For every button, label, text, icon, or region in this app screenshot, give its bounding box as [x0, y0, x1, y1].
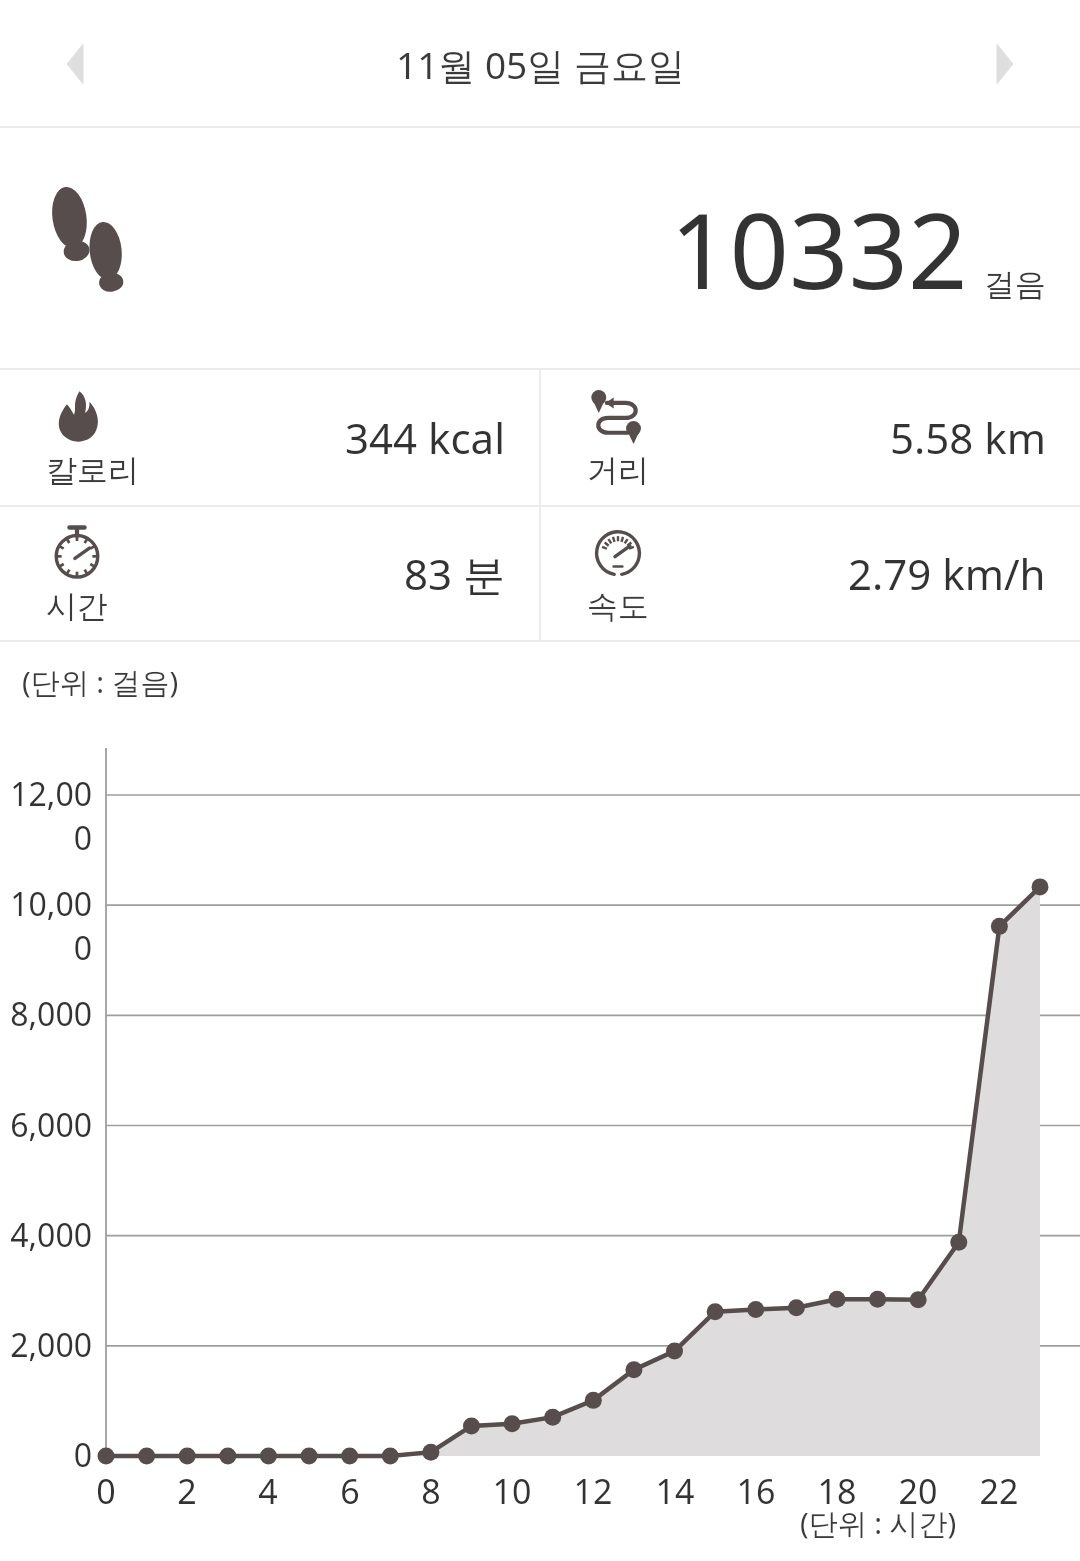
staticText: 2,000 — [0, 1323, 92, 1367]
staticText: 4 — [238, 1468, 298, 1514]
staticText: 20 — [888, 1468, 948, 1514]
staticText: 12,000 — [0, 772, 92, 860]
staticText: 0 — [0, 1433, 92, 1477]
button[interactable]: 거리 — [541, 370, 1080, 505]
staticText: 11월 05일 금요일 — [396, 39, 685, 90]
staticText: 83 분 — [404, 545, 505, 602]
staticText: 8 — [401, 1468, 461, 1514]
staticText: 10,000 — [0, 882, 92, 970]
staticText: 14 — [645, 1468, 705, 1514]
staticText: 6 — [320, 1468, 380, 1514]
staticText: 5.58 km — [890, 409, 1046, 466]
staticText: 18 — [807, 1468, 867, 1514]
staticText: (단위 : 시간) — [800, 1503, 957, 1543]
button[interactable]: Steps — [0, 128, 1080, 370]
staticText: 4,000 — [0, 1213, 92, 1257]
staticText: 시간 — [46, 587, 108, 626]
staticText: 8,000 — [0, 992, 92, 1036]
staticText: 0 — [76, 1468, 136, 1514]
button[interactable]: 시간 — [0, 507, 539, 640]
staticText: 6,000 — [0, 1103, 92, 1147]
button[interactable]: 칼로리 — [0, 370, 539, 505]
staticText: (단위 : 걸음) — [22, 662, 179, 702]
staticText: 22 — [969, 1468, 1029, 1514]
other: Steps — [46, 185, 144, 313]
staticText: 2 — [157, 1468, 217, 1514]
staticText: 16 — [726, 1468, 786, 1514]
staticText: 10332 — [670, 178, 968, 320]
staticText: 칼로리 — [46, 451, 139, 490]
staticText: 거리 — [587, 451, 649, 490]
button[interactable]: Next day — [966, 25, 1044, 103]
staticText: 12 — [563, 1468, 623, 1514]
staticText: 2.79 km/h — [848, 545, 1046, 602]
staticText: 속도 — [587, 587, 649, 626]
staticText: 걸음 — [984, 265, 1046, 304]
button[interactable]: 속도 — [541, 507, 1080, 640]
staticText: 344 kcal — [345, 409, 505, 466]
staticText: 10 — [482, 1468, 542, 1514]
button[interactable]: Previous day — [36, 25, 114, 103]
